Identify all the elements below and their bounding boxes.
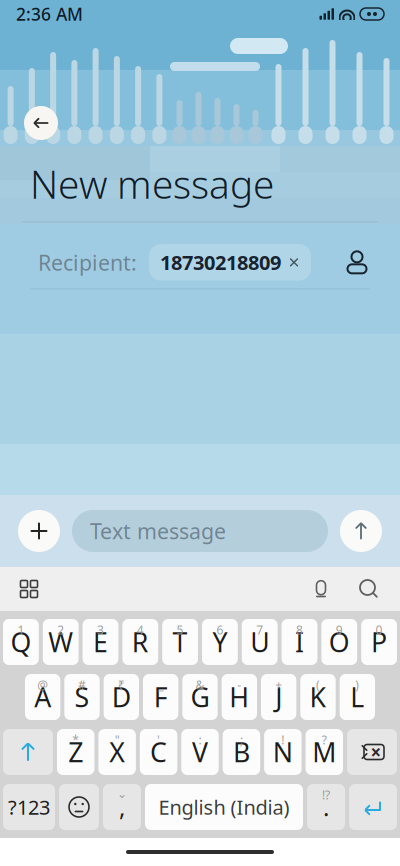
button[interactable]: Voice input <box>304 572 338 606</box>
staticText: Z <box>68 734 83 770</box>
staticText: T <box>173 624 188 660</box>
staticText: ! <box>281 732 284 748</box>
staticText: Recipient: <box>38 248 137 276</box>
staticText: V <box>192 734 208 770</box>
button[interactable]: Backspace <box>347 729 397 775</box>
button[interactable]: A <box>25 674 60 720</box>
button[interactable]: . <box>307 784 345 830</box>
staticText: 4 <box>137 622 144 638</box>
staticText: S <box>74 679 89 715</box>
staticText: ? <box>322 732 327 748</box>
staticText: ( <box>316 677 320 693</box>
button[interactable]: Search <box>352 572 386 606</box>
button[interactable]: T <box>162 619 198 665</box>
button[interactable]: 18730218809 <box>149 244 311 281</box>
staticText: M <box>312 734 336 770</box>
button[interactable]: M <box>306 729 343 775</box>
staticText: N <box>273 734 293 770</box>
staticText: 3 <box>97 622 104 638</box>
button[interactable]: E <box>83 619 118 665</box>
staticText: New message <box>30 158 274 209</box>
staticText: A <box>34 679 51 715</box>
button[interactable]: Enter <box>349 784 397 830</box>
staticText: D <box>112 679 131 715</box>
button[interactable]: Back <box>24 106 58 140</box>
staticText: O <box>329 624 350 660</box>
staticText: × <box>370 740 381 764</box>
staticText: 7 <box>256 622 263 638</box>
button[interactable]: L <box>340 674 375 720</box>
button[interactable]: Z <box>57 729 94 775</box>
staticText: F <box>154 679 168 715</box>
button[interactable]: English (India) <box>145 784 303 830</box>
button[interactable]: F <box>143 674 178 720</box>
button[interactable]: O <box>321 619 357 665</box>
staticText: & <box>195 677 204 693</box>
staticText: E <box>93 624 108 660</box>
button[interactable]: C <box>140 729 177 775</box>
button[interactable]: I <box>282 619 317 665</box>
staticText: C <box>150 734 167 770</box>
button[interactable]: B <box>223 729 260 775</box>
staticText: 18730218809 <box>160 249 281 276</box>
button[interactable]: Choose contact <box>340 245 374 279</box>
button[interactable]: Y <box>202 619 238 665</box>
button[interactable]: X <box>98 729 136 775</box>
staticText: 6 <box>216 622 223 638</box>
button[interactable]: W <box>43 619 79 665</box>
staticText: " <box>115 732 120 748</box>
staticText: U <box>250 624 269 660</box>
button[interactable]: Keyboard options <box>12 572 46 606</box>
staticText: R <box>132 624 149 660</box>
staticText: 8 <box>296 622 303 638</box>
staticText: 2 <box>57 622 64 638</box>
staticText: I <box>295 624 304 660</box>
button[interactable]: Send <box>340 510 382 552</box>
button[interactable]: G <box>182 674 218 720</box>
button[interactable]: , <box>103 784 141 830</box>
staticText: - <box>237 677 241 693</box>
staticText: 2:36 AM <box>16 2 83 25</box>
staticText: * <box>72 732 79 748</box>
staticText: # <box>78 677 86 693</box>
staticText: J <box>275 679 282 715</box>
button[interactable]: Q <box>3 619 39 665</box>
button[interactable]: Shift <box>3 729 53 775</box>
button[interactable]: U <box>242 619 278 665</box>
staticText: 1 <box>17 622 24 638</box>
staticText: B <box>233 734 250 770</box>
button[interactable]: ?123 <box>3 784 55 830</box>
staticText: @ <box>37 677 48 693</box>
staticText: !? <box>322 787 330 803</box>
staticText: L <box>350 679 364 715</box>
button[interactable]: V <box>181 729 219 775</box>
button[interactable]: Text message <box>72 510 328 552</box>
button[interactable]: N <box>264 729 301 775</box>
staticText: 0 <box>376 622 383 638</box>
staticText: + <box>275 677 282 693</box>
button[interactable]: K <box>300 674 336 720</box>
button[interactable]: J <box>261 674 296 720</box>
staticText: H <box>229 679 249 715</box>
staticText: X <box>109 734 125 770</box>
button[interactable]: Emoji <box>59 784 99 830</box>
staticText: ?123 <box>8 794 50 820</box>
button[interactable]: P <box>361 619 397 665</box>
button[interactable]: Add attachment <box>18 510 60 552</box>
staticText: Text message <box>90 517 226 545</box>
button[interactable]: H <box>222 674 257 720</box>
button[interactable]: S <box>64 674 100 720</box>
staticText: 5 <box>177 622 184 638</box>
staticText: , <box>119 791 125 823</box>
staticText: English (India) <box>158 794 289 820</box>
staticText: : <box>198 732 201 748</box>
staticText: ' <box>157 732 160 748</box>
staticText: G <box>190 679 209 715</box>
staticText: ₹ <box>118 677 125 693</box>
staticText: P <box>371 624 387 660</box>
staticText: Y <box>212 624 227 660</box>
staticText: W <box>48 624 73 660</box>
staticText: 9 <box>336 622 343 638</box>
button[interactable]: D <box>104 674 139 720</box>
button[interactable]: R <box>122 619 158 665</box>
